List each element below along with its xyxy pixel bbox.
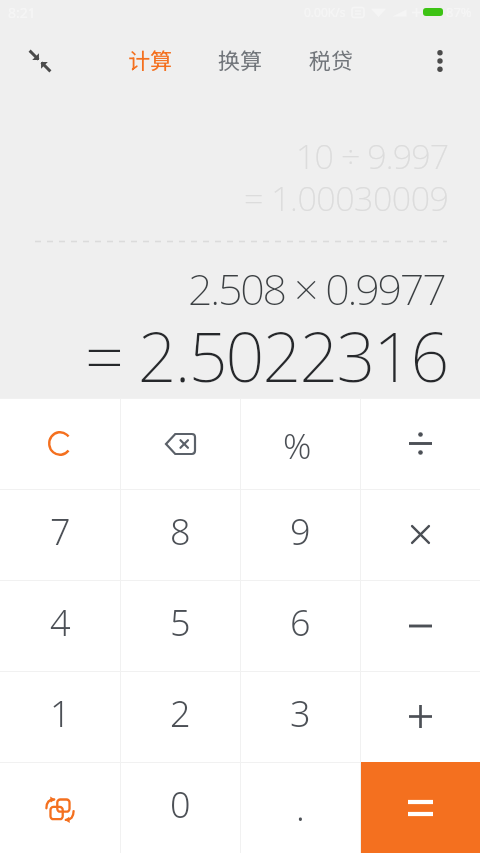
button[interactable]: 3 [240,671,360,762]
button[interactable]: 0 [120,762,240,853]
staticText: 换算 [218,43,263,75]
staticText: 2 [170,689,191,738]
button[interactable]: 4 [0,580,120,671]
button[interactable] [360,398,480,489]
button[interactable]: Backspace [120,398,240,489]
button[interactable] [360,580,480,671]
button[interactable]: 计算 [112,22,188,96]
button[interactable]: . [240,762,360,853]
staticText: 计算 [128,43,173,75]
staticText: 4 [50,598,71,647]
staticText: 6 [290,598,311,647]
staticText: 1 [50,689,71,738]
staticText: 2.508 × 0.9977 [188,259,445,318]
staticText: 8 [170,507,191,556]
button[interactable]: Collapse [11,32,69,90]
staticText: 9 [290,507,311,556]
staticText: 3 [290,689,311,738]
button[interactable] [360,489,480,580]
staticText: = 1.00030009 [244,175,449,221]
staticText: % [283,422,312,470]
button[interactable]: Unit convert [0,762,120,853]
button[interactable]: 6 [240,580,360,671]
button[interactable]: 换算 [202,22,278,96]
button[interactable] [360,762,480,853]
button[interactable]: % [240,398,360,489]
button[interactable]: 8 [120,489,240,580]
button[interactable]: 2 [120,671,240,762]
staticText: = 2.5022316 [85,309,448,402]
button[interactable]: 1 [0,671,120,762]
button[interactable]: More options [411,32,469,90]
button[interactable] [360,671,480,762]
staticText: 0 [170,780,191,829]
button[interactable]: 9 [240,489,360,580]
staticText: . [296,783,305,832]
staticText: 5 [170,598,191,647]
button[interactable]: 5 [120,580,240,671]
button[interactable]: 税贷 [293,22,369,96]
button[interactable] [0,398,120,489]
staticText: 税贷 [309,43,354,75]
staticText: 7 [50,507,71,556]
staticText: 10 ÷ 9.997 [296,133,449,179]
button[interactable]: 7 [0,489,120,580]
